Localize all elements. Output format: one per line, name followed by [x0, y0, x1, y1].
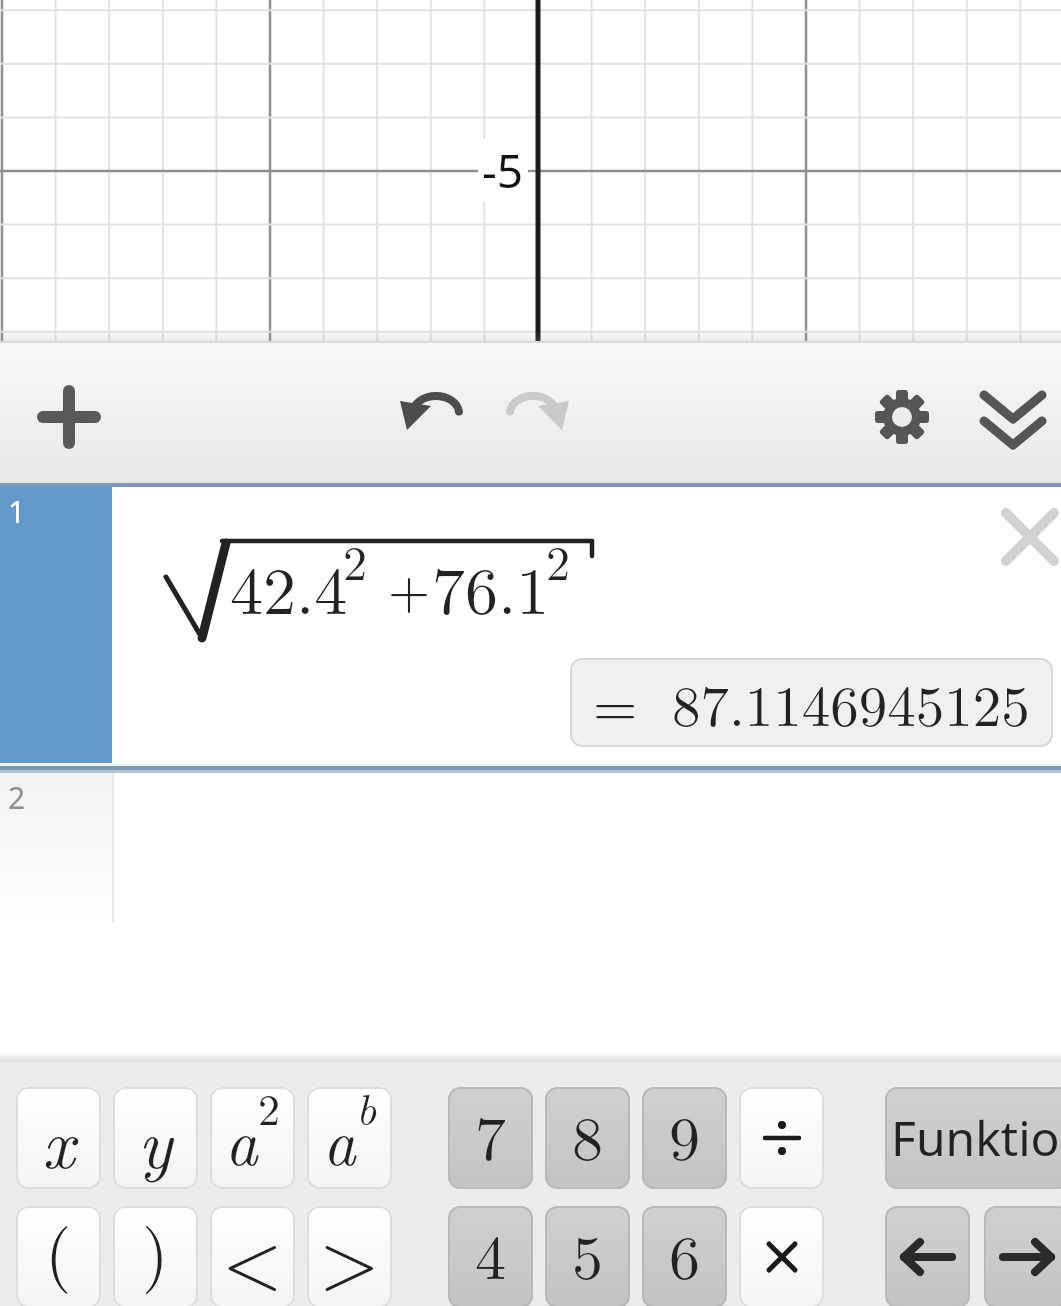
button[interactable]: 7 [448, 1087, 533, 1189]
button[interactable]: 5 [545, 1206, 630, 1306]
button[interactable]: Funktionen [885, 1087, 1061, 1189]
button[interactable]: a [307, 1087, 392, 1189]
button[interactable]: 6 [642, 1206, 727, 1306]
button[interactable] [739, 1087, 824, 1189]
button[interactable]: > [307, 1206, 392, 1306]
staticText: 4 [475, 1209, 507, 1297]
button[interactable]: 4 [448, 1206, 533, 1306]
button[interactable]: 1 [0, 487, 1061, 763]
staticText: 76.1 [432, 540, 550, 634]
button[interactable]: ( [16, 1206, 101, 1306]
staticText: -5 [482, 139, 524, 202]
button[interactable] [739, 1206, 824, 1306]
button[interactable]: 2 [0, 773, 1061, 1062]
button[interactable] [506, 390, 570, 448]
staticText: 5 [572, 1209, 604, 1297]
button[interactable]: 9 [642, 1087, 727, 1189]
staticText: a [225, 1093, 258, 1184]
staticText: a [323, 1093, 356, 1184]
staticText: 6 [669, 1209, 701, 1297]
staticText: 42.4 [230, 540, 348, 634]
button[interactable] [33, 386, 105, 448]
staticText: y [138, 1089, 173, 1188]
staticText: 7 [475, 1090, 507, 1178]
staticText: 87.1146945125 [672, 662, 1030, 743]
staticText: Funktionen [891, 1105, 1061, 1170]
button[interactable] [996, 503, 1061, 571]
button[interactable] [885, 1206, 970, 1306]
button[interactable]: x [16, 1087, 101, 1189]
button[interactable]: y [113, 1087, 198, 1189]
staticText: 2 [258, 1087, 280, 1137]
button[interactable] [984, 1206, 1061, 1306]
staticText: 2 [8, 777, 26, 818]
staticText: ) [142, 1206, 169, 1296]
button[interactable]: a [210, 1087, 295, 1189]
button[interactable] [399, 390, 463, 448]
button[interactable] [866, 386, 938, 448]
staticText: 1 [8, 491, 26, 532]
staticText: < [222, 1206, 283, 1302]
button[interactable]: 8 [545, 1087, 630, 1189]
button[interactable] [977, 388, 1049, 450]
staticText: b [356, 1087, 377, 1137]
staticText: 2 [546, 526, 571, 594]
button[interactable]: ) [113, 1206, 198, 1306]
staticText: + [388, 548, 431, 625]
button[interactable]: < [210, 1206, 295, 1306]
staticText: > [319, 1206, 380, 1302]
staticText: 2 [343, 526, 368, 594]
staticText: 9 [669, 1090, 701, 1178]
staticText: 8 [572, 1090, 604, 1178]
staticText: = [593, 662, 638, 743]
staticText: ( [45, 1206, 72, 1296]
staticText: x [42, 1089, 75, 1188]
